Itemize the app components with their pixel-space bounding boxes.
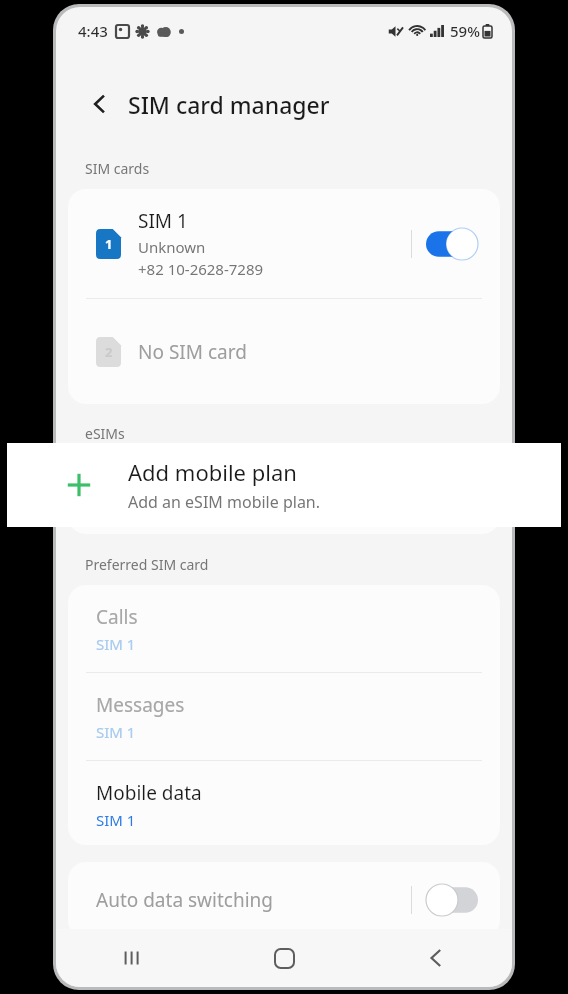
- button[interactable]: Turn off: [426, 228, 478, 260]
- staticText: SIM cards: [85, 159, 150, 178]
- staticText: SIM 1: [138, 208, 188, 234]
- button[interactable]: Recent apps: [104, 930, 160, 986]
- staticText: eSIMs: [85, 424, 125, 443]
- button[interactable]: Add mobile plan: [7, 443, 561, 527]
- staticText: 1: [105, 235, 113, 253]
- button[interactable]: Calls: [68, 585, 500, 672]
- staticText: Messages: [96, 692, 185, 718]
- button[interactable]: Home: [256, 930, 312, 986]
- staticText: SIM 1: [96, 810, 136, 830]
- staticText: Add mobile plan: [128, 457, 297, 487]
- staticText: SIM 1: [96, 634, 136, 654]
- staticText: +82 10-2628-7289: [138, 259, 264, 279]
- button[interactable]: Turn on: [426, 884, 478, 916]
- staticText: Unknown: [138, 237, 206, 257]
- button[interactable]: Back: [408, 930, 464, 986]
- staticText: Calls: [96, 604, 138, 630]
- staticText: 2: [105, 343, 113, 361]
- staticText: No SIM card: [138, 339, 247, 365]
- staticText: 59%: [450, 21, 480, 41]
- staticText: Auto data switching: [96, 887, 411, 913]
- button[interactable]: 2: [68, 299, 500, 404]
- staticText: Mobile data: [96, 780, 202, 806]
- button[interactable]: Messages: [68, 673, 500, 760]
- button[interactable]: Back: [80, 84, 120, 124]
- staticText: Add an eSIM mobile plan.: [128, 491, 321, 513]
- staticText: 4:43: [78, 21, 108, 41]
- button[interactable]: Auto data switching: [68, 862, 500, 938]
- staticText: Preferred SIM card: [85, 555, 209, 574]
- staticText: SIM 1: [96, 722, 136, 742]
- button[interactable]: Mobile data: [68, 761, 500, 845]
- button[interactable]: 1: [68, 189, 500, 298]
- staticText: SIM card manager: [128, 89, 330, 120]
